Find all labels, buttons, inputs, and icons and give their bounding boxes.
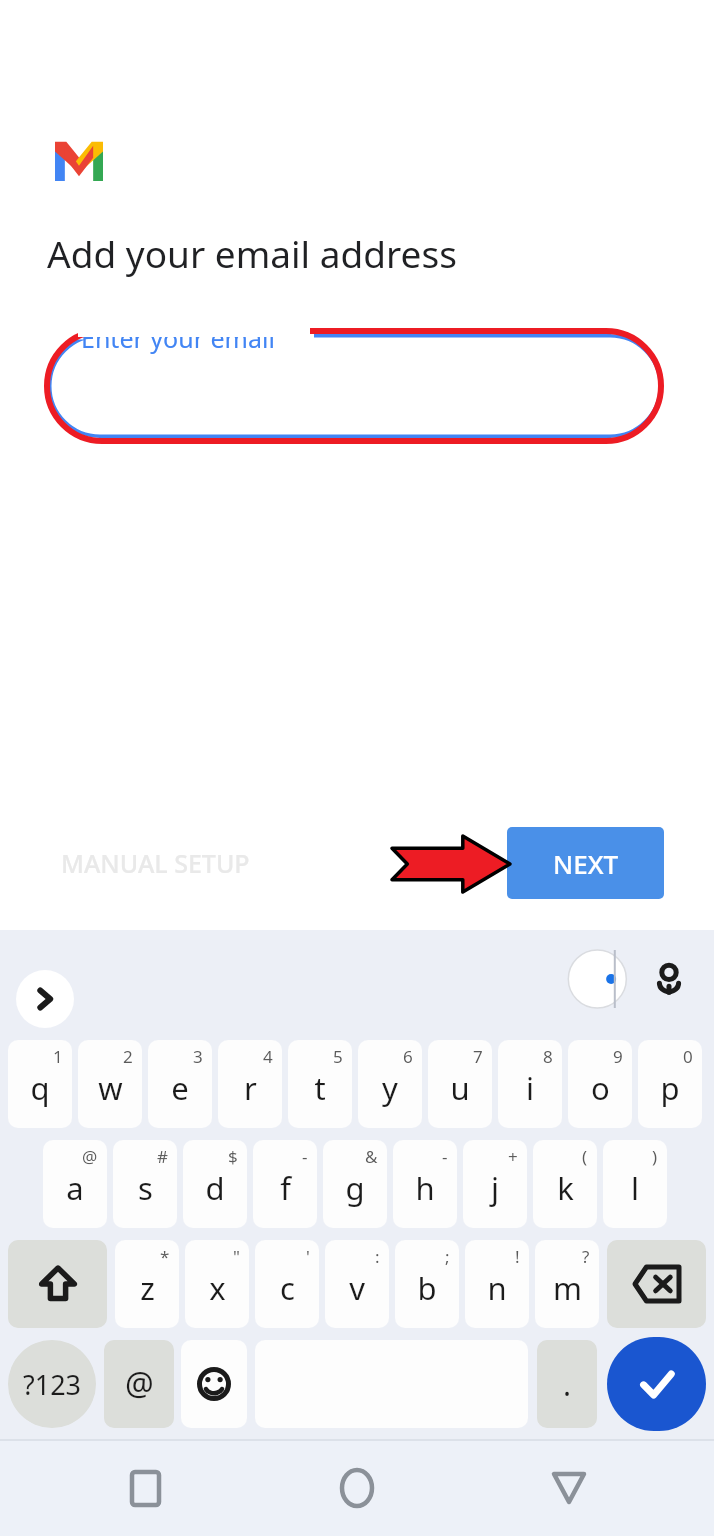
button[interactable]: y [358,1040,422,1128]
button[interactable]: Emoji [181,1340,247,1428]
button[interactable]: MANUAL SETUP [30,832,280,894]
staticText: d [205,1167,225,1209]
button[interactable]: Done [607,1337,706,1431]
staticText: ? [582,1245,590,1268]
staticText: . [563,1364,572,1405]
button[interactable]: Voice input [640,950,698,1008]
button[interactable]: Back [534,1453,604,1523]
button[interactable]: d [183,1140,247,1228]
staticText: 3 [193,1045,203,1068]
button[interactable]: u [428,1040,492,1128]
staticText: i [526,1067,534,1109]
button[interactable]: g [323,1140,387,1228]
staticText: x [209,1267,226,1309]
button[interactable]: Recents [110,1453,180,1523]
button[interactable]: t [288,1040,352,1128]
staticText: MANUAL SETUP [61,846,250,880]
button[interactable]: e [148,1040,212,1128]
staticText: + [508,1145,518,1168]
button[interactable]: i [498,1040,562,1128]
button[interactable] [48,334,662,438]
staticText: @ [125,1362,154,1406]
button[interactable]: b [395,1240,459,1328]
staticText: j [491,1167,499,1209]
button[interactable]: n [465,1240,529,1328]
staticText: v [349,1267,365,1309]
button[interactable]: Expand toolbar [16,970,74,1028]
staticText: Enter your email [81,321,275,355]
staticText: q [30,1067,50,1109]
staticText: u [450,1067,470,1109]
button[interactable]: v [325,1240,389,1328]
staticText: n [487,1267,507,1309]
staticText: ; [445,1245,450,1268]
button[interactable]: Shift [8,1240,107,1328]
button[interactable]: c [255,1240,319,1328]
staticText: c [280,1267,295,1309]
button[interactable]: h [393,1140,457,1228]
button[interactable]: k [533,1140,597,1228]
staticText: 2 [123,1045,133,1068]
staticText: 8 [543,1045,553,1068]
staticText: h [415,1167,435,1209]
staticText: p [660,1067,680,1109]
staticText: - [442,1145,448,1168]
staticText: 7 [473,1045,483,1068]
staticText: w [98,1067,123,1109]
staticText: k [557,1167,574,1209]
staticText: ' [306,1245,310,1268]
button[interactable]: NEXT [507,827,664,899]
staticText: z [140,1267,155,1309]
button[interactable]: r [218,1040,282,1128]
staticText: t [314,1067,326,1109]
staticText: " [233,1245,240,1268]
button[interactable]: . [537,1340,597,1428]
staticText: 5 [333,1045,343,1068]
button[interactable]: Home [322,1453,392,1523]
staticText: # [157,1145,168,1168]
staticText: $ [228,1145,238,1168]
staticText: r [244,1067,257,1109]
staticText: 1 [53,1045,63,1068]
staticText: s [138,1167,153,1209]
staticText: * [160,1245,170,1268]
button[interactable]: f [253,1140,317,1228]
staticText: g [345,1167,365,1209]
staticText: 0 [683,1045,693,1068]
staticText: b [417,1267,437,1309]
button[interactable]: j [463,1140,527,1228]
button[interactable]: @ [104,1340,174,1428]
staticText: ( [582,1145,588,1168]
staticText: a [66,1167,84,1209]
button[interactable]: z [115,1240,179,1328]
staticText: - [302,1145,308,1168]
button[interactable]: s [113,1140,177,1228]
button[interactable]: o [568,1040,632,1128]
staticText: ! [515,1245,520,1268]
staticText: ) [652,1145,658,1168]
staticText: e [171,1067,189,1109]
staticText: NEXT [553,846,619,881]
staticText: Add your email address [47,228,457,278]
button[interactable]: ?123 [8,1340,96,1428]
staticText: ?123 [23,1366,82,1403]
button[interactable]: Backspace [607,1240,706,1328]
staticText: f [280,1167,291,1209]
button[interactable]: q [8,1040,72,1128]
button[interactable]: w [78,1040,142,1128]
staticText: y [382,1067,398,1109]
button[interactable]: a [43,1140,107,1228]
staticText: 4 [263,1045,273,1068]
staticText: @ [82,1145,98,1168]
button[interactable]: x [185,1240,249,1328]
staticText: : [375,1245,380,1268]
button[interactable]: p [638,1040,702,1128]
staticText: m [553,1267,582,1309]
button[interactable]: l [603,1140,667,1228]
staticText: & [365,1145,378,1168]
button[interactable]: m [535,1240,599,1328]
staticText: l [631,1167,639,1209]
staticText: 6 [403,1045,413,1068]
staticText: 9 [613,1045,623,1068]
